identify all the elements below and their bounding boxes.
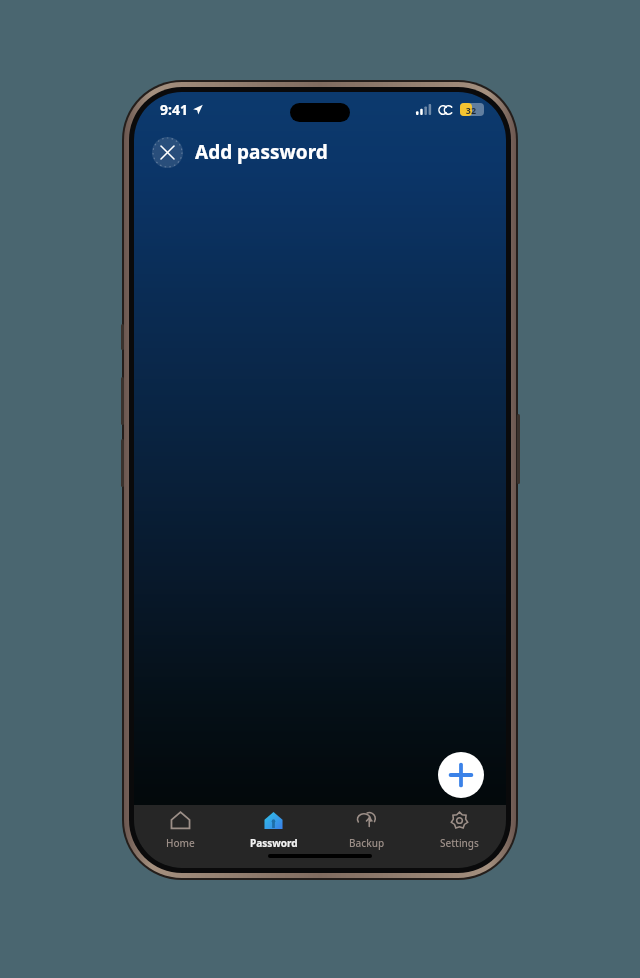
staticText: 32 <box>460 104 482 116</box>
button[interactable]: Add password <box>438 752 484 798</box>
staticText: Password <box>250 836 298 850</box>
staticText: 9:41 <box>160 100 188 119</box>
button[interactable]: Password <box>227 810 320 850</box>
button[interactable]: Close <box>152 137 183 168</box>
staticText: Add password <box>195 139 328 165</box>
button[interactable]: Backup <box>320 810 413 850</box>
button[interactable]: Home <box>134 810 227 850</box>
button[interactable]: Settings <box>413 810 506 850</box>
staticText: Backup <box>349 836 385 850</box>
staticText: Settings <box>440 836 479 850</box>
staticText: Home <box>166 836 195 850</box>
